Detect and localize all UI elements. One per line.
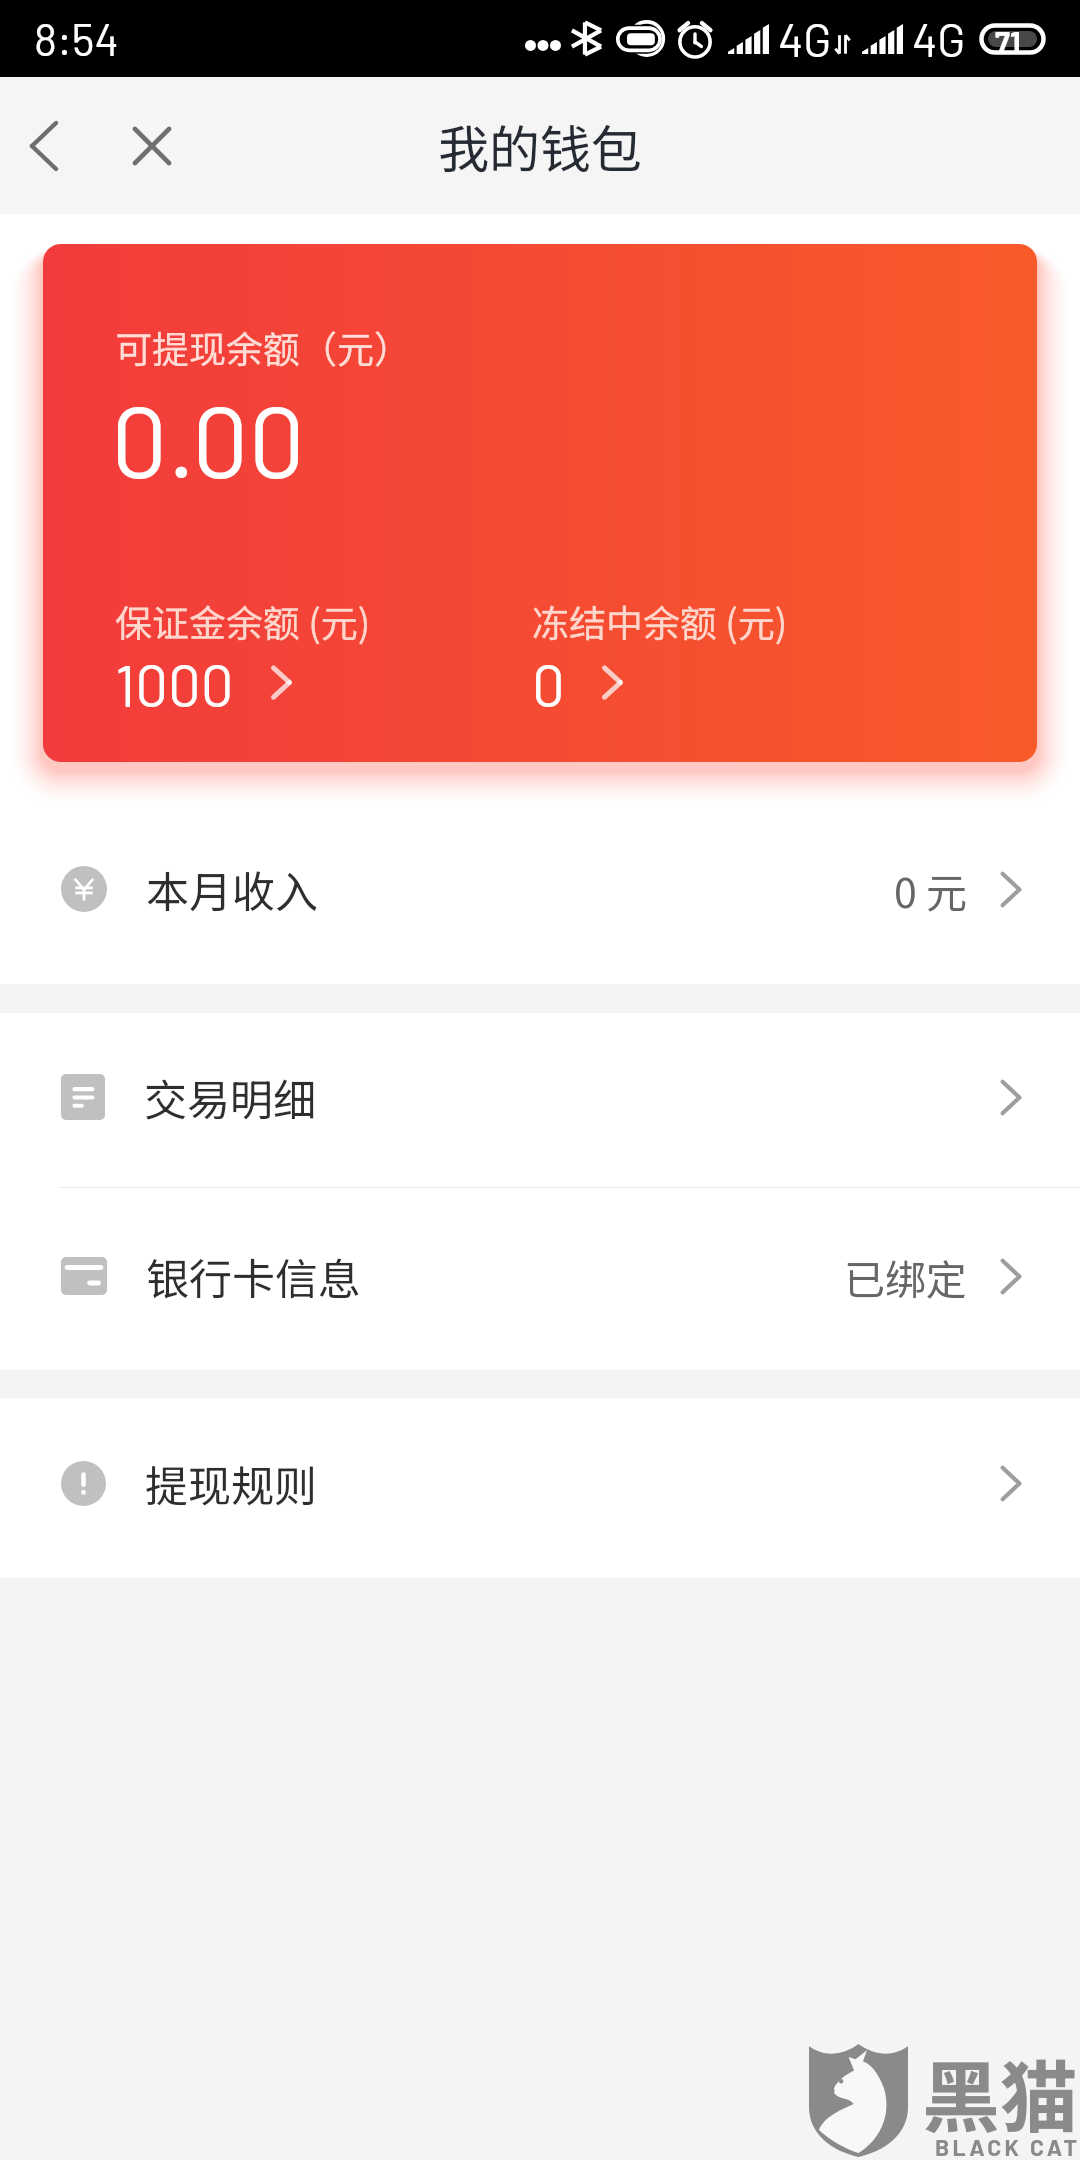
staticText: 已绑定 bbox=[844, 1247, 967, 1306]
button[interactable]: 可提现余额（元） bbox=[43, 244, 1037, 762]
staticText: 我的钱包 bbox=[438, 109, 643, 183]
staticText: 0.00 bbox=[111, 378, 305, 498]
staticText: 冻结中余额 (元) bbox=[532, 594, 788, 648]
staticText: 黑猫 bbox=[922, 2036, 1079, 2149]
button[interactable]: 提现规则 bbox=[0, 1398, 1080, 1578]
staticText: BLACK CAT bbox=[935, 2133, 1080, 2160]
button[interactable]: Back bbox=[6, 108, 82, 184]
staticText: 71 bbox=[995, 23, 1021, 55]
staticText: 8:54 bbox=[34, 12, 119, 65]
button[interactable]: 银行卡信息 bbox=[0, 1188, 1080, 1370]
button[interactable]: 冻结中余额 (元) bbox=[532, 594, 788, 726]
staticText: 银行卡信息 bbox=[146, 1245, 361, 1307]
staticText: 0 bbox=[532, 649, 565, 719]
staticText: 本月收入 bbox=[146, 858, 318, 920]
button[interactable]: 保证金余额 (元) bbox=[115, 594, 532, 726]
staticText: 保证金余额 (元) bbox=[115, 594, 371, 648]
staticText: 交易明细 bbox=[144, 1066, 316, 1128]
button[interactable]: Close bbox=[114, 108, 190, 184]
button[interactable]: 交易明细 bbox=[0, 1013, 1080, 1187]
staticText: 1000 bbox=[115, 649, 234, 719]
button[interactable]: 本月收入 bbox=[0, 788, 1080, 980]
staticText: 0 元 bbox=[894, 860, 967, 919]
staticText: 可提现余额（元） bbox=[115, 320, 411, 374]
staticText: 4G bbox=[778, 11, 832, 66]
staticText: 提现规则 bbox=[145, 1452, 317, 1514]
staticText: 4G bbox=[912, 11, 966, 66]
